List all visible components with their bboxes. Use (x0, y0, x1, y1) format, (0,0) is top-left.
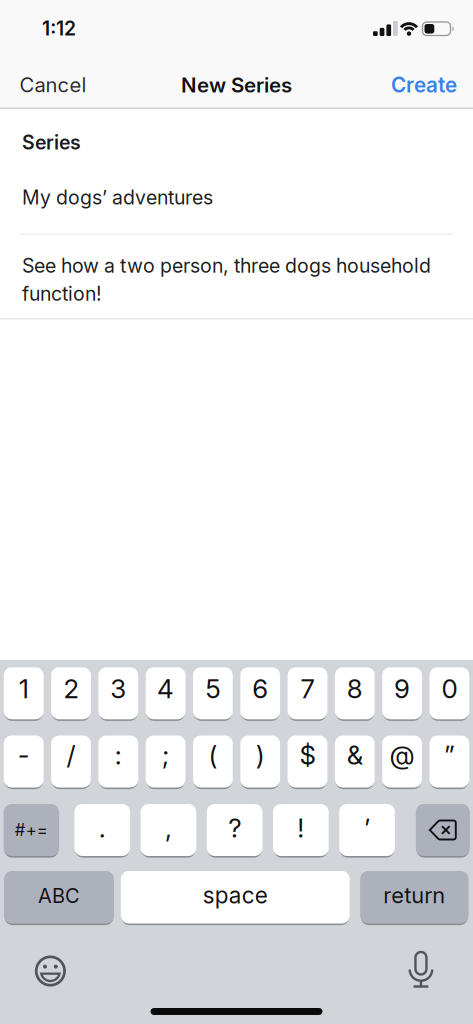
staticText: Series (22, 131, 81, 154)
staticText: 1:12 (42, 17, 76, 40)
staticText: 1 (19, 673, 29, 705)
button[interactable]: Cancel (19, 72, 86, 97)
button[interactable]: & (335, 735, 375, 787)
button[interactable]: ! (273, 804, 329, 856)
button[interactable]: / (51, 735, 91, 787)
button[interactable]: 2 (51, 667, 91, 719)
button[interactable]: ? (207, 804, 262, 856)
button[interactable]: 6 (240, 667, 280, 719)
button[interactable]: $ (288, 735, 327, 787)
staticText: 0 (441, 673, 457, 705)
button[interactable]: ’ (339, 804, 395, 856)
staticText: function! (22, 282, 102, 305)
button[interactable]: . (74, 804, 130, 856)
staticText: & (347, 739, 363, 771)
staticText: / (66, 739, 75, 771)
staticText: , (165, 812, 172, 844)
staticText: ; (162, 739, 169, 771)
staticText: ) (256, 739, 265, 771)
button[interactable]: See how a two person, three dogs househo… (0, 235, 473, 318)
staticText: My dogs’ adventures (22, 186, 213, 209)
button[interactable]: @ (382, 735, 422, 787)
button[interactable]: ) (240, 735, 280, 787)
staticText: 9 (394, 673, 410, 705)
button[interactable]: 0 (429, 667, 469, 719)
staticText: Create (391, 72, 457, 97)
button[interactable]: return (360, 871, 468, 923)
staticText: 4 (157, 673, 174, 705)
staticText: #+= (15, 820, 48, 840)
staticText: Cancel (19, 72, 86, 97)
staticText: ! (297, 812, 304, 844)
button[interactable]: 5 (193, 667, 233, 719)
staticText: 3 (110, 673, 126, 705)
staticText: New Series (181, 72, 292, 97)
button[interactable]: 3 (98, 667, 138, 719)
staticText: space (203, 881, 268, 909)
staticText: $ (299, 739, 315, 771)
button[interactable]: 4 (146, 667, 185, 719)
button[interactable]: - (4, 735, 44, 787)
staticText: ” (444, 739, 455, 771)
staticText: ’ (364, 812, 370, 844)
staticText: ? (228, 812, 241, 844)
button[interactable] (34, 955, 66, 987)
button[interactable]: 1 (4, 667, 44, 719)
staticText: ( (208, 739, 217, 771)
button[interactable]: #+= (4, 804, 59, 856)
staticText: return (383, 882, 445, 908)
button[interactable]: 9 (382, 667, 422, 719)
button[interactable]: My dogs’ adventures (0, 163, 473, 233)
button[interactable]: : (98, 735, 138, 787)
button[interactable] (416, 804, 470, 856)
staticText: 6 (252, 673, 268, 705)
staticText: 7 (300, 673, 314, 705)
staticText: @ (390, 739, 415, 771)
staticText: ABC (38, 884, 80, 908)
staticText: 8 (347, 673, 363, 705)
button[interactable]: ” (429, 735, 469, 787)
staticText: See how a two person, three dogs househo… (22, 254, 431, 277)
button[interactable] (410, 952, 432, 988)
button[interactable]: Create (0, 72, 457, 97)
staticText: - (18, 739, 30, 771)
button[interactable]: ( (193, 735, 233, 787)
button[interactable]: ABC (4, 871, 114, 923)
staticText: . (99, 812, 106, 844)
button[interactable]: , (141, 804, 196, 856)
staticText: : (115, 739, 122, 771)
button[interactable]: 8 (335, 667, 375, 719)
button[interactable]: space (121, 871, 350, 923)
staticText: 2 (63, 673, 78, 705)
button[interactable]: 7 (288, 667, 327, 719)
button[interactable]: ; (146, 735, 185, 787)
staticText: 5 (205, 673, 220, 705)
